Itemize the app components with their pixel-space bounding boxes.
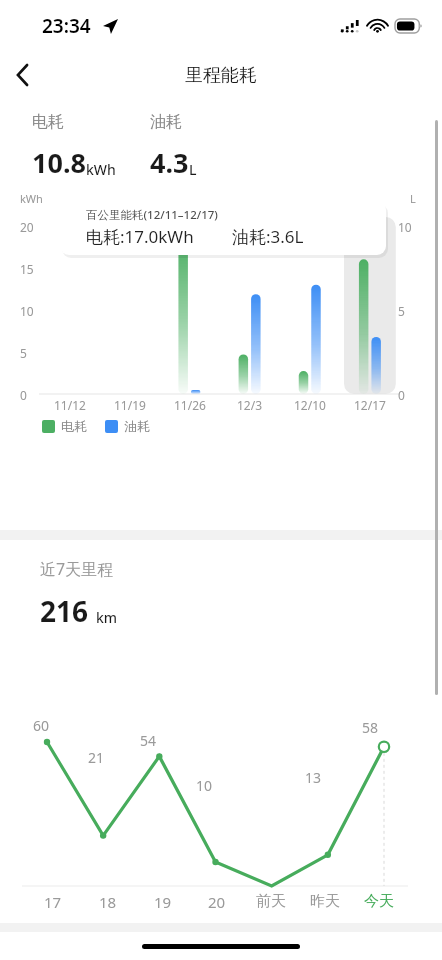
staticText: 216 <box>40 592 89 630</box>
staticText: 10 <box>20 303 34 319</box>
staticText: 今天 <box>364 892 394 911</box>
staticText: 11/26 <box>174 397 206 413</box>
staticText: 11/19 <box>114 397 146 413</box>
staticText: 0 <box>398 387 405 403</box>
staticText: 21 <box>88 748 105 767</box>
button[interactable]: 今天 <box>352 892 406 911</box>
button[interactable]: Back <box>0 53 44 97</box>
staticText: 电耗 <box>61 418 87 434</box>
button[interactable]: 20 <box>190 892 244 912</box>
button[interactable]: 18 <box>80 892 135 912</box>
staticText: 5 <box>398 303 405 319</box>
staticText: 4.3 <box>150 144 189 181</box>
staticText: L <box>410 191 416 206</box>
button[interactable]: 17 <box>25 892 80 912</box>
staticText: 20 <box>208 892 226 912</box>
staticText: 近7天里程 <box>40 558 114 580</box>
staticText: 油耗:3.6L <box>232 225 304 248</box>
staticText: 17 <box>44 892 62 912</box>
staticText: kWh <box>20 191 43 206</box>
staticText: 油耗 <box>150 112 182 132</box>
staticText: 电耗 <box>32 112 64 132</box>
staticText: 15 <box>20 261 34 277</box>
staticText: 10 <box>398 219 412 235</box>
staticText: 19 <box>154 892 172 912</box>
staticText: L <box>189 160 197 179</box>
button[interactable]: 19 <box>135 892 190 912</box>
staticText: 电耗:17.0kWh <box>86 225 194 248</box>
staticText: 12/3 <box>237 397 263 413</box>
staticText: 11/12 <box>54 397 86 413</box>
staticText: 10 <box>196 776 213 795</box>
staticText: kWh <box>86 160 116 179</box>
staticText: 60 <box>33 716 50 735</box>
staticText: 18 <box>99 892 117 912</box>
staticText: 5 <box>20 345 27 361</box>
staticText: km <box>96 608 118 627</box>
button[interactable]: 昨天 <box>298 892 352 911</box>
staticText: 13 <box>305 768 322 787</box>
staticText: 12/17 <box>354 397 386 413</box>
staticText: 10.8 <box>32 144 86 181</box>
staticText: 20 <box>20 219 34 235</box>
staticText: 百公里能耗(12/11–12/17) <box>86 207 218 223</box>
staticText: 0 <box>20 387 27 403</box>
staticText: 昨天 <box>310 892 340 911</box>
staticText: 里程能耗 <box>185 64 257 87</box>
staticText: 12/10 <box>294 397 326 413</box>
button[interactable]: 前天 <box>244 892 298 911</box>
staticText: 油耗 <box>124 418 150 434</box>
staticText: 54 <box>140 731 157 750</box>
staticText: 前天 <box>256 892 286 911</box>
button[interactable]: 百公里能耗(12/11–12/17) <box>60 201 386 255</box>
staticText: 58 <box>362 718 379 737</box>
staticText: 23:34 <box>42 13 91 39</box>
